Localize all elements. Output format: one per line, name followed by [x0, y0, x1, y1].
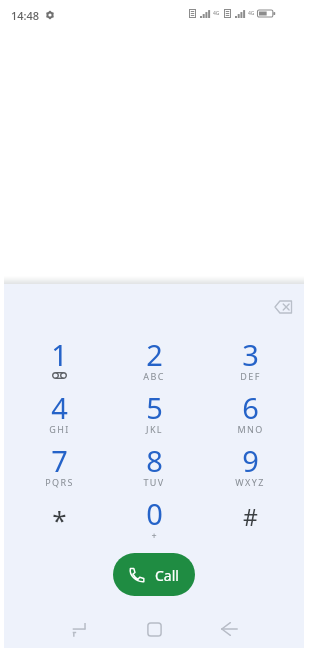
- staticText: WXYZ: [235, 476, 265, 488]
- button[interactable]: [13, 497, 105, 547]
- staticText: 0: [146, 494, 163, 533]
- staticText: *: [52, 502, 67, 537]
- staticText: 3: [242, 335, 259, 374]
- button[interactable]: [108, 391, 200, 441]
- button[interactable]: [13, 391, 105, 441]
- staticText: 2: [146, 335, 163, 374]
- button[interactable]: [204, 444, 296, 494]
- staticText: 9: [242, 441, 259, 480]
- button[interactable]: [204, 338, 296, 388]
- staticText: PQRS: [45, 476, 74, 488]
- staticText: 8: [146, 441, 163, 480]
- button[interactable]: Back: [211, 611, 247, 647]
- staticText: 7: [51, 441, 68, 480]
- staticText: 6: [242, 388, 259, 427]
- staticText: Call: [155, 566, 179, 585]
- staticText: ABC: [143, 370, 165, 382]
- staticText: 4G: [213, 10, 220, 17]
- button[interactable]: [204, 391, 296, 441]
- button[interactable]: [108, 338, 200, 388]
- button[interactable]: [113, 553, 195, 596]
- staticText: 4: [51, 388, 68, 427]
- staticText: 1: [51, 335, 68, 374]
- staticText: TUV: [143, 476, 165, 488]
- button[interactable]: Recent apps: [61, 611, 97, 647]
- staticText: 14:48: [11, 8, 40, 23]
- staticText: +: [151, 529, 157, 541]
- button[interactable]: Backspace: [267, 291, 299, 323]
- button[interactable]: [204, 497, 296, 547]
- staticText: MNO: [237, 423, 264, 435]
- staticText: #: [243, 501, 258, 532]
- button[interactable]: [13, 338, 105, 388]
- staticText: GHI: [49, 423, 70, 435]
- button[interactable]: Home: [136, 611, 172, 647]
- staticText: 4G: [248, 10, 255, 17]
- button[interactable]: [108, 497, 200, 547]
- staticText: JKL: [146, 423, 163, 435]
- staticText: 5: [146, 388, 163, 427]
- button[interactable]: [13, 444, 105, 494]
- staticText: DEF: [240, 370, 261, 382]
- button[interactable]: [108, 444, 200, 494]
